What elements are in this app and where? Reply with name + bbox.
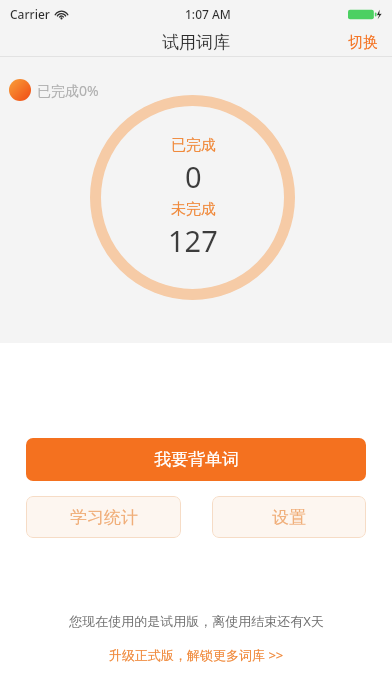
button[interactable]: 升级正式版，解锁更多词库 >> bbox=[101, 644, 292, 666]
staticText: 我要背单词 bbox=[154, 449, 239, 470]
button[interactable]: 切换 bbox=[334, 29, 392, 56]
staticText: 127 bbox=[168, 221, 218, 260]
staticText: 已完成0% bbox=[37, 81, 99, 100]
staticText: 设置 bbox=[272, 507, 306, 528]
staticText: 升级正式版，解锁更多词库 >> bbox=[109, 646, 284, 664]
staticText: 0 bbox=[185, 157, 202, 196]
staticText: 学习统计 bbox=[70, 507, 138, 528]
button[interactable]: 设置 bbox=[212, 496, 366, 538]
button[interactable]: 我要背单词 bbox=[26, 438, 366, 481]
staticText: Carrier bbox=[10, 6, 50, 22]
staticText: 1:07 AM bbox=[185, 6, 231, 22]
staticText: 未完成 bbox=[171, 200, 216, 219]
staticText: 已完成 bbox=[171, 136, 216, 155]
button[interactable]: 学习统计 bbox=[26, 496, 181, 538]
staticText: 试用词库 bbox=[162, 32, 230, 53]
staticText: 您现在使用的是试用版，离使用结束还有X天 bbox=[69, 612, 324, 630]
staticText: 切换 bbox=[348, 33, 378, 52]
